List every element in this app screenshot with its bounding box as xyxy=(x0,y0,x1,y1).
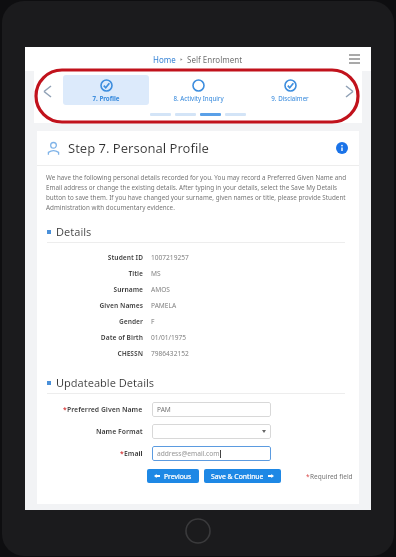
staticText: F xyxy=(151,317,155,326)
button[interactable]: address@email.com xyxy=(152,446,271,461)
staticText: Given Names xyxy=(99,301,143,310)
staticText: Required field xyxy=(310,472,353,481)
staticText: MS xyxy=(151,269,161,278)
staticText: * xyxy=(306,472,310,481)
button[interactable]: 9. Disclaimer xyxy=(247,75,333,105)
staticText: address@email.com xyxy=(157,449,220,458)
button[interactable]: Menu xyxy=(345,50,363,68)
button[interactable]: Next step xyxy=(336,71,362,111)
staticText: Step 7. Personal Profile xyxy=(68,139,209,157)
staticText: PAMELA xyxy=(151,301,177,310)
button[interactable]: PAM xyxy=(152,402,271,417)
staticText: Home xyxy=(153,54,176,65)
staticText: Name Format xyxy=(96,427,143,436)
staticText: 1007219257 xyxy=(151,253,189,262)
staticText: Self Enrolment xyxy=(187,54,243,65)
staticText: 9. Disclaimer xyxy=(271,94,309,102)
staticText: 7986432152 xyxy=(151,349,189,358)
staticText: Previous xyxy=(164,472,192,481)
staticText: Gender xyxy=(118,317,143,326)
button[interactable]: Previous xyxy=(147,469,199,483)
button[interactable]: 8. Activity Inquiry xyxy=(155,75,241,105)
staticText: Surname xyxy=(113,285,143,294)
staticText: We have the following personal details r… xyxy=(46,173,347,212)
button[interactable]: Previous step xyxy=(34,71,60,111)
staticText: Date of Birth xyxy=(100,333,143,342)
staticText: Student ID xyxy=(107,253,143,262)
staticText: Updateable Details xyxy=(56,375,155,390)
staticText: 8. Activity Inquiry xyxy=(173,94,224,102)
staticText: * xyxy=(120,449,124,458)
staticText: PAM xyxy=(157,405,171,414)
staticText: Preferred Given Name xyxy=(67,405,143,414)
button[interactable]: Save & Continue xyxy=(204,469,281,483)
staticText: CHESSN xyxy=(117,349,143,358)
staticText: Details xyxy=(56,224,92,239)
button[interactable]: Information xyxy=(334,140,350,156)
staticText: 01/01/1975 xyxy=(151,333,187,342)
staticText: * xyxy=(63,405,67,414)
staticText: 7. Profile xyxy=(92,94,120,102)
button[interactable]: 7. Profile xyxy=(63,75,149,105)
staticText: Save & Continue xyxy=(211,472,264,481)
staticText: AMOS xyxy=(151,285,170,294)
staticText: Title xyxy=(128,269,143,278)
staticText: Email xyxy=(124,449,143,458)
button[interactable]: Name Format dropdown xyxy=(152,424,271,439)
